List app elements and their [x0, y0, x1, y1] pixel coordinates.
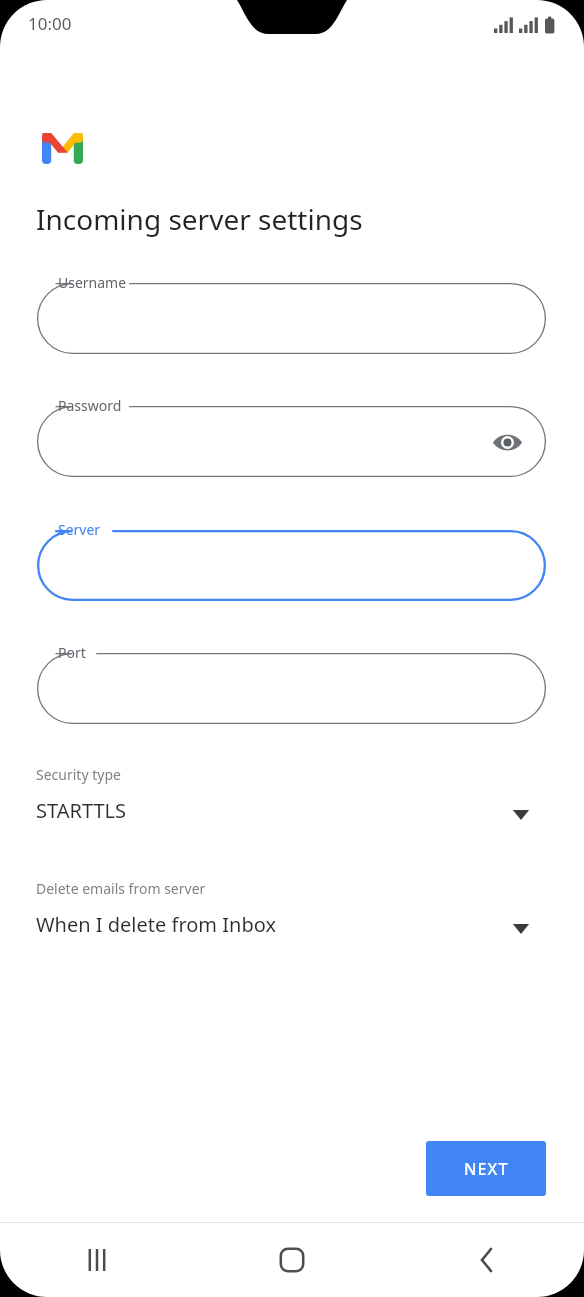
- staticText: 10:00: [28, 12, 72, 35]
- staticText: When I delete from Inbox: [36, 911, 276, 938]
- staticText: Password: [58, 396, 122, 415]
- button[interactable]: Show password: [37, 406, 546, 477]
- button[interactable]: Back: [389, 1223, 584, 1297]
- staticText: NEXT: [464, 1158, 509, 1180]
- button[interactable]: Security type: [0, 765, 584, 843]
- button[interactable]: [37, 653, 546, 724]
- button[interactable]: Show password: [486, 421, 528, 463]
- staticText: Delete emails from server: [36, 879, 206, 898]
- button[interactable]: [37, 283, 546, 354]
- staticText: Server: [58, 520, 101, 539]
- staticText: Security type: [36, 765, 121, 784]
- staticText: Username: [58, 273, 127, 292]
- button[interactable]: Delete emails from server: [0, 879, 584, 957]
- staticText: Port: [58, 643, 86, 662]
- staticText: Incoming server settings: [36, 200, 363, 238]
- button[interactable]: Home: [194, 1223, 389, 1297]
- staticText: STARTTLS: [36, 797, 127, 824]
- button[interactable]: [37, 530, 546, 601]
- button[interactable]: NEXT: [426, 1141, 546, 1196]
- button[interactable]: Recents: [0, 1223, 194, 1297]
